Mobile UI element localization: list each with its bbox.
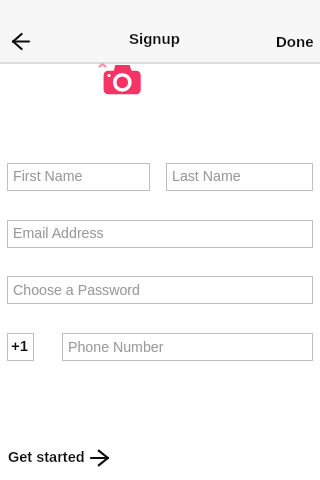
staticText: Last Name [172, 168, 241, 184]
button[interactable]: Get started [3, 443, 118, 473]
button[interactable]: +1 [7, 333, 34, 361]
staticText: Get started [8, 449, 85, 465]
button[interactable]: Last Name [166, 163, 313, 191]
other: Add photo [98, 62, 146, 96]
staticText: Signup [129, 30, 180, 47]
staticText: Email Address [13, 225, 104, 241]
staticText: First Name [13, 168, 83, 184]
button[interactable]: Done [269, 27, 320, 54]
staticText: Done [276, 33, 314, 50]
staticText: +1 [11, 337, 29, 354]
staticText: Phone Number [68, 339, 164, 355]
staticText: Choose a Password [13, 282, 140, 298]
button[interactable]: First Name [7, 163, 150, 191]
button[interactable]: Phone Number [62, 333, 313, 361]
button[interactable]: Choose a Password [7, 276, 313, 304]
button[interactable]: Email Address [7, 220, 313, 248]
button[interactable]: Back [4, 28, 37, 55]
